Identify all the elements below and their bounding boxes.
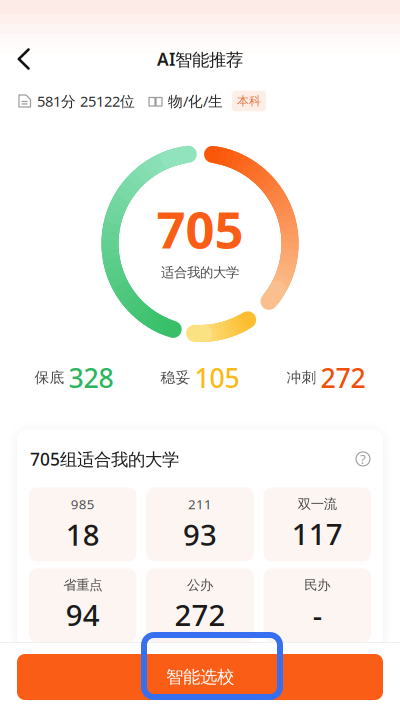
staticText: 94 (66, 595, 100, 634)
staticText: - (313, 595, 322, 634)
staticText: 272 (320, 360, 365, 395)
button[interactable]: Back (0, 40, 46, 78)
staticText: 公办 (187, 577, 213, 593)
staticText: 105 (194, 360, 239, 395)
staticText: ? (360, 450, 366, 468)
staticText: 18 (66, 515, 100, 554)
staticText: AI智能推荐 (157, 47, 243, 70)
staticText: 保底 (34, 369, 64, 387)
staticText: 智能选校 (166, 666, 234, 688)
staticText: 本科 (237, 94, 261, 108)
staticText: 适合我的大学 (161, 264, 239, 281)
button[interactable]: 省重点 (29, 568, 136, 642)
staticText: 985 (71, 495, 95, 513)
staticText: 211 (188, 495, 212, 513)
staticText: 物/化/生 (168, 91, 223, 111)
button[interactable]: 985 (29, 487, 136, 561)
button[interactable]: 双一流 (264, 487, 371, 561)
button[interactable]: 公办 (146, 568, 254, 642)
button[interactable]: 211 (146, 487, 254, 561)
staticText: 705组适合我的大学 (30, 447, 179, 470)
staticText: 稳妥 (160, 369, 190, 387)
staticText: 民办 (304, 577, 330, 593)
button[interactable]: 民办 (264, 568, 371, 642)
staticText: 冲刺 (286, 369, 316, 387)
button[interactable]: Help (356, 452, 370, 466)
staticText: 272 (174, 595, 225, 634)
staticText: 省重点 (63, 577, 102, 593)
staticText: 双一流 (298, 496, 337, 512)
staticText: 93 (183, 515, 217, 554)
button[interactable]: 智能选校 (17, 654, 383, 700)
staticText: 328 (68, 360, 113, 395)
staticText: 581分 25122位 (37, 91, 135, 111)
staticText: 705 (156, 195, 243, 262)
staticText: 117 (292, 514, 343, 553)
